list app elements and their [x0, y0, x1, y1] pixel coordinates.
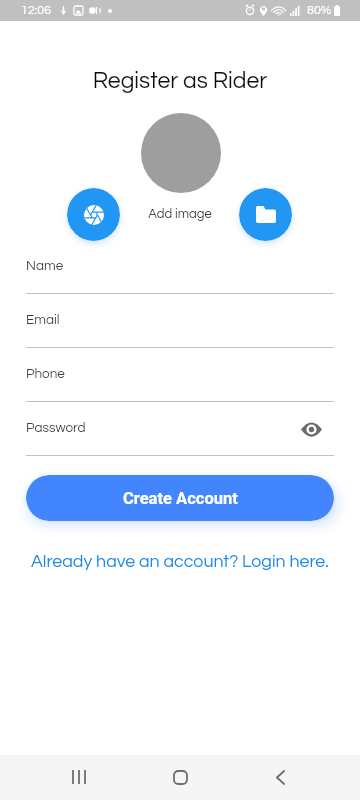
- button[interactable]: Already have an account? Login here.: [0, 548, 360, 574]
- staticText: Add image: [0, 207, 360, 220]
- staticText: Register as Rider: [0, 69, 360, 93]
- button[interactable]: Phone: [0, 348, 360, 402]
- staticText: Password: [26, 421, 86, 435]
- button[interactable]: Create Account: [26, 475, 334, 521]
- button[interactable]: Recent apps: [59, 757, 99, 797]
- button[interactable]: Email: [0, 294, 360, 348]
- staticText: Email: [26, 313, 60, 327]
- button[interactable]: Home: [160, 757, 200, 797]
- button[interactable]: Profile image: [141, 113, 221, 193]
- button[interactable]: Back: [260, 757, 300, 797]
- staticText: Name: [26, 259, 64, 273]
- button[interactable]: Take photo with camera: [67, 188, 120, 241]
- staticText: 80%: [307, 4, 332, 17]
- button[interactable]: Show password: [295, 413, 327, 445]
- button[interactable]: Pick image from files: [239, 188, 292, 241]
- button[interactable]: Name: [0, 240, 360, 294]
- staticText: Already have an account? Login here.: [31, 552, 329, 570]
- staticText: 12:06: [21, 4, 52, 17]
- staticText: Create Account: [123, 489, 238, 508]
- staticText: Phone: [26, 367, 65, 381]
- button[interactable]: Password: [0, 402, 360, 456]
